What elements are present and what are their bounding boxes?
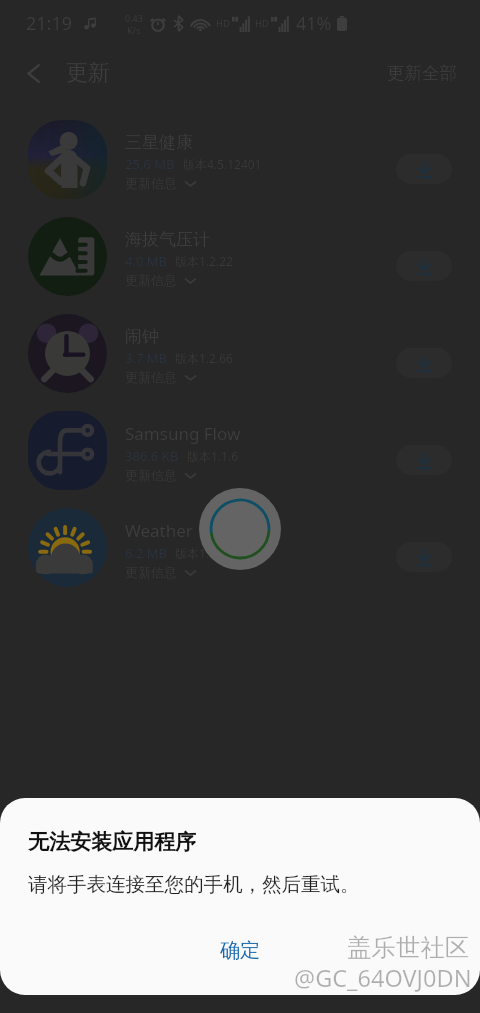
button[interactable]: Weather — [0, 497, 480, 594]
staticText: 41% — [296, 11, 332, 36]
staticText: 版本1.2.66 — [175, 350, 233, 366]
button[interactable]: Download update — [396, 542, 452, 572]
staticText: 更新信息 — [125, 272, 177, 288]
staticText: 更新信息 — [125, 175, 177, 191]
staticText: 6.2 MB — [125, 544, 167, 562]
button[interactable]: 确定 — [28, 927, 452, 995]
staticText: 版本4.5.12401 — [183, 156, 262, 172]
button[interactable]: Download update — [396, 348, 452, 378]
staticText: 更新全部 — [387, 62, 457, 84]
staticText: Weather — [125, 519, 193, 542]
staticText: 更新信息 — [125, 369, 177, 385]
staticText: 更新信息 — [125, 467, 177, 483]
button[interactable]: Back — [12, 52, 54, 94]
staticText: 版本1.6.01 — [175, 545, 233, 561]
staticText: 0.43 — [125, 12, 143, 24]
staticText: 无法安装应用程序 — [28, 829, 196, 855]
button[interactable]: 三星健康 — [0, 109, 480, 206]
button[interactable]: 海拔气压计 — [0, 206, 480, 303]
button[interactable]: Download update — [396, 445, 452, 475]
button[interactable]: Download update — [396, 251, 452, 281]
staticText: 闹钟 — [125, 326, 159, 347]
staticText: 386.6 KB — [125, 447, 179, 465]
staticText: 21:19 — [26, 11, 73, 36]
button[interactable]: 更新全部 — [384, 54, 460, 92]
button[interactable]: Download update — [396, 154, 452, 184]
staticText: 请将手表连接至您的手机，然后重试。 — [28, 872, 360, 897]
staticText: 25.6 MB — [125, 155, 175, 173]
staticText: 4.0 MB — [125, 252, 167, 270]
staticText: 三星健康 — [125, 132, 193, 153]
staticText: Samsung Flow — [125, 422, 241, 445]
staticText: 盖乐世社区 — [347, 932, 470, 963]
staticText: HD — [216, 17, 230, 30]
staticText: 3.7 MB — [125, 349, 167, 367]
staticText: 确定 — [220, 938, 260, 963]
staticText: K/s — [127, 24, 141, 36]
staticText: HD — [255, 17, 269, 30]
staticText: 海拔气压计 — [125, 229, 210, 250]
staticText: @GC_64OVJ0DN — [294, 962, 472, 994]
staticText: 更新信息 — [125, 564, 177, 580]
staticText: 版本1.1.6 — [187, 448, 239, 464]
staticText: 版本1.2.22 — [175, 253, 233, 269]
button[interactable]: Samsung Flow — [0, 400, 480, 497]
staticText: 更新 — [66, 59, 110, 87]
button[interactable]: 闹钟 — [0, 303, 480, 400]
